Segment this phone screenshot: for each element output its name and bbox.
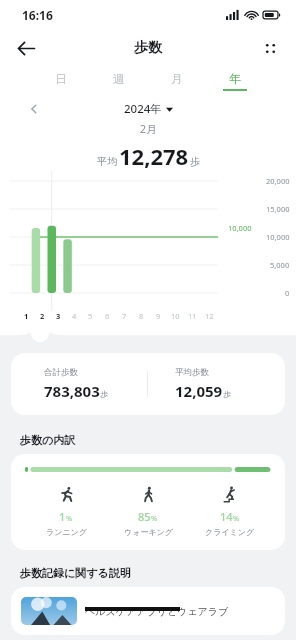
staticText: 歩数の内訳: [20, 433, 76, 447]
staticText: 歩: [223, 389, 231, 399]
button[interactable]: 合計歩数: [11, 353, 285, 415]
staticText: 9: [156, 311, 161, 321]
button[interactable]: 1: [11, 454, 285, 550]
staticText: 平均: [97, 155, 117, 168]
staticText: 月: [171, 71, 183, 86]
staticText: 1: [24, 311, 29, 321]
staticText: 12,278: [119, 141, 189, 171]
staticText: 歩: [190, 155, 200, 168]
staticText: 3: [56, 311, 61, 321]
staticText: 10,000: [228, 223, 252, 233]
staticText: 5,000: [270, 260, 290, 270]
staticText: 20,000: [266, 176, 290, 186]
staticText: 2月: [140, 122, 157, 136]
staticText: 2: [40, 311, 45, 321]
staticText: 5: [88, 311, 93, 321]
button[interactable]: 週: [90, 66, 148, 96]
staticText: ウォーキング: [124, 527, 173, 537]
staticText: %: [151, 513, 158, 523]
staticText: 11: [188, 311, 197, 321]
staticText: 10,000: [266, 232, 290, 242]
staticText: %: [66, 513, 73, 523]
button[interactable]: 2024年: [124, 101, 173, 117]
staticText: 15,000: [266, 204, 290, 214]
staticText: 783,803: [44, 381, 100, 401]
staticText: ランニング: [46, 527, 87, 537]
staticText: 歩数記録に関する説明: [20, 566, 131, 580]
staticText: クライミング: [205, 527, 255, 537]
staticText: ヘルスケアアプリとウェアラブ: [85, 605, 229, 618]
staticText: 合計歩数: [44, 367, 78, 378]
staticText: 85: [138, 509, 151, 524]
staticText: 7: [122, 311, 127, 321]
staticText: 8: [139, 311, 144, 321]
button[interactable]: ヘルスケアアプリとウェアラブ: [11, 587, 285, 635]
staticText: %: [233, 513, 240, 523]
staticText: 14: [220, 509, 233, 524]
button[interactable]: 月: [148, 66, 206, 96]
staticText: 歩数: [134, 39, 162, 57]
staticText: 6: [105, 311, 110, 321]
button[interactable]: Previous year: [22, 97, 46, 121]
staticText: 日: [55, 71, 67, 86]
staticText: 週: [113, 71, 125, 86]
staticText: 1: [59, 509, 66, 524]
button[interactable]: 日: [32, 66, 90, 96]
button[interactable]: 年: [206, 66, 264, 96]
staticText: 0: [285, 288, 290, 298]
staticText: 10: [171, 311, 180, 321]
staticText: 4: [72, 311, 77, 321]
staticText: 2024年: [124, 101, 162, 117]
button[interactable]: Back: [8, 30, 44, 66]
staticText: 16:16: [22, 7, 53, 23]
staticText: 歩: [100, 389, 108, 399]
staticText: 12: [205, 311, 214, 321]
button[interactable]: More options: [252, 30, 288, 66]
staticText: 12,059: [175, 381, 223, 401]
staticText: 年: [229, 71, 241, 86]
staticText: 平均歩数: [175, 367, 209, 378]
